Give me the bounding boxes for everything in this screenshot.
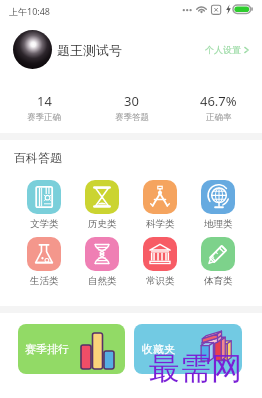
button[interactable]: 自然类 bbox=[73, 237, 131, 287]
button[interactable]: 常识类 bbox=[131, 237, 189, 287]
staticText: 个人设置 bbox=[205, 44, 241, 55]
staticText: 生活类 bbox=[30, 275, 59, 287]
staticText: 自然类 bbox=[88, 275, 117, 287]
button[interactable]: 赛季排行 bbox=[18, 324, 125, 374]
staticText: 最需网 bbox=[149, 349, 242, 388]
staticText: 常识类 bbox=[146, 275, 175, 287]
staticText: 30 bbox=[124, 92, 139, 110]
staticText: 正确率 bbox=[206, 112, 232, 123]
button[interactable]: 地理类 bbox=[189, 180, 247, 230]
staticText: 14 bbox=[37, 92, 52, 110]
staticText: 科学类 bbox=[146, 218, 175, 230]
button[interactable]: 科学类 bbox=[131, 180, 189, 230]
staticText: 百科答题 bbox=[14, 150, 62, 165]
button[interactable]: 体育类 bbox=[189, 237, 247, 287]
button[interactable]: 14 bbox=[0, 92, 88, 123]
button[interactable]: 30 bbox=[88, 92, 175, 123]
staticText: 收藏夹 bbox=[142, 342, 175, 356]
staticText: 历史类 bbox=[88, 218, 117, 230]
staticText: 赛季正确 bbox=[27, 112, 61, 123]
staticText: 赛季答题 bbox=[115, 112, 149, 123]
button[interactable]: 46.7% bbox=[175, 92, 262, 123]
staticText: 文学类 bbox=[30, 218, 59, 230]
staticText: 46.7% bbox=[200, 92, 237, 110]
staticText: 地理类 bbox=[204, 218, 233, 230]
staticText: 体育类 bbox=[204, 275, 233, 287]
staticText: 上午10:48 bbox=[9, 5, 51, 17]
button[interactable]: 历史类 bbox=[73, 180, 131, 230]
button[interactable]: 个人设置 bbox=[205, 44, 249, 55]
button[interactable]: 文学类 bbox=[15, 180, 73, 230]
button[interactable]: 生活类 bbox=[15, 237, 73, 287]
staticText: 题王测试号 bbox=[57, 42, 122, 58]
staticText: 赛季排行 bbox=[25, 342, 69, 356]
button[interactable]: 收藏夹 bbox=[134, 324, 242, 374]
